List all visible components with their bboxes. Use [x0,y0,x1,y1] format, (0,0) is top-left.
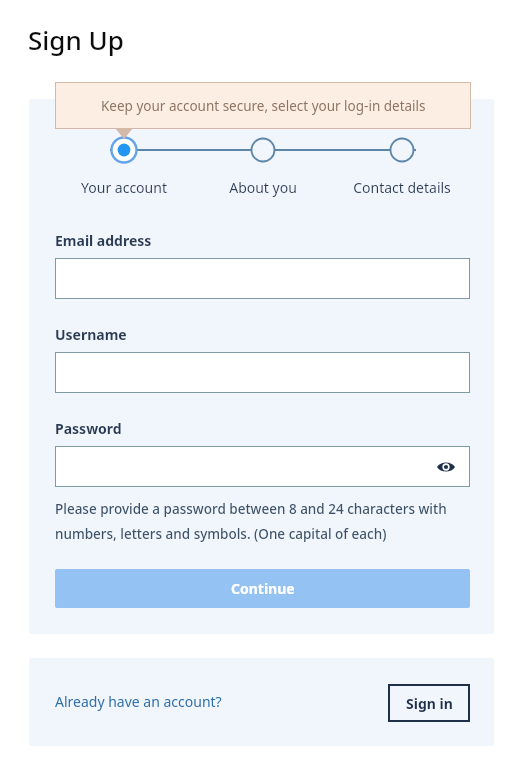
staticText: Username [55,325,127,344]
staticText: Sign in [406,694,453,713]
staticText: Password [55,419,122,438]
staticText: numbers, letters and symbols. (One capit… [55,525,387,543]
staticText: About you [229,178,297,197]
staticText: Continue [231,579,295,598]
staticText: Keep your account secure, select your lo… [101,97,426,115]
button[interactable]: Continue [55,569,470,608]
button[interactable] [55,258,470,299]
button[interactable] [55,352,470,393]
button[interactable]: About you step [248,135,278,165]
button[interactable]: Contact details step [387,135,417,165]
staticText: Contact details [353,178,451,197]
button[interactable]: Show password [434,455,458,479]
staticText: Sign Up [28,22,124,57]
staticText: Already have an account? [55,692,222,711]
staticText: Email address [55,231,152,250]
button[interactable]: Already have an account? [55,692,222,711]
button[interactable]: Show password [55,446,470,487]
staticText: Please provide a password between 8 and … [55,500,447,518]
staticText: Your account [81,178,167,197]
button[interactable]: Your account step [109,135,139,165]
button[interactable]: Sign in [388,684,470,722]
